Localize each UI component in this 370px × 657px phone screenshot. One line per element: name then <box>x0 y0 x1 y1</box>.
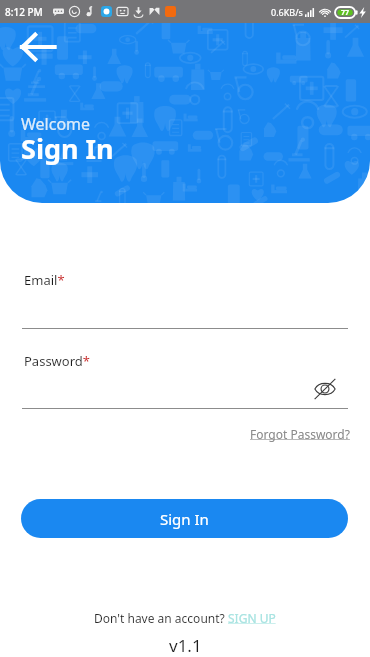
staticText: Sign In <box>160 509 209 529</box>
staticText: Email* <box>24 271 65 289</box>
button[interactable]: Show password <box>310 374 340 404</box>
button[interactable]: Back <box>17 27 57 67</box>
staticText: Forgot Password? <box>250 426 350 442</box>
staticText: v1.1 <box>169 634 202 657</box>
staticText: Welcome <box>21 113 91 135</box>
button[interactable]: Password input <box>22 349 348 409</box>
staticText: 0.6KB/s <box>271 6 303 18</box>
button[interactable]: SIGN UP <box>228 610 276 626</box>
staticText: Don't have an account? <box>94 610 228 626</box>
button[interactable]: Sign In <box>21 499 348 538</box>
button[interactable]: Email input <box>22 268 348 329</box>
staticText: 77 <box>341 8 350 18</box>
staticText: Sign In <box>21 130 114 167</box>
staticText: Password* <box>24 352 90 370</box>
button[interactable]: Forgot Password? <box>250 426 350 442</box>
staticText: 8:12 PM <box>5 5 43 19</box>
staticText: SIGN UP <box>228 610 276 626</box>
